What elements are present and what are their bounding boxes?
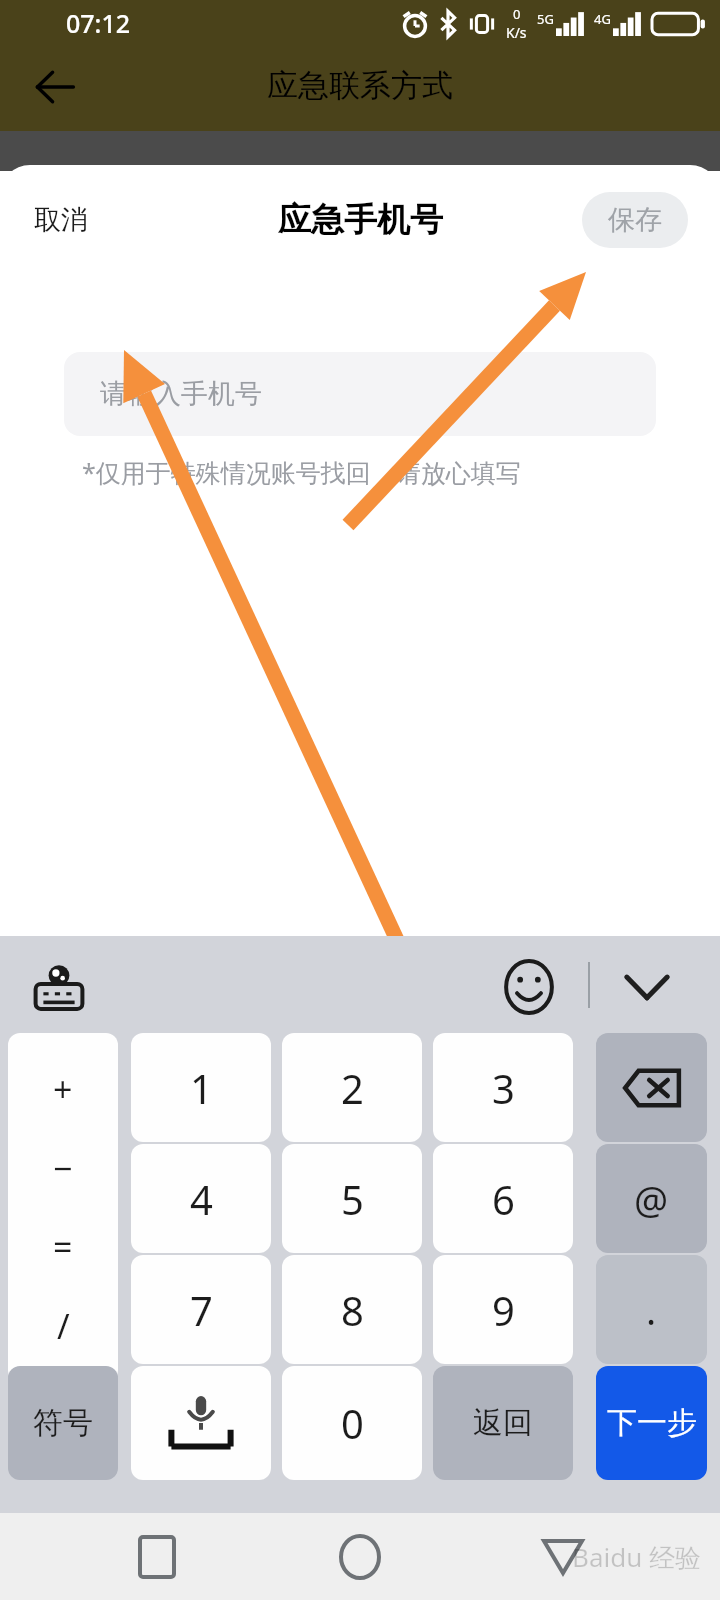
staticText: − — [53, 1145, 73, 1191]
button[interactable]: 6 — [433, 1144, 573, 1253]
button[interactable]: 保存 — [582, 192, 688, 248]
staticText: 返回 — [473, 1404, 533, 1442]
staticText: Baidu 经验 — [572, 1539, 702, 1575]
staticText: = — [53, 1224, 73, 1270]
staticText: 1 — [190, 1061, 213, 1115]
button[interactable]: 符号 — [8, 1366, 118, 1480]
staticText: 符号 — [33, 1404, 93, 1442]
staticText: 3 — [492, 1061, 515, 1115]
button[interactable]: . — [596, 1255, 707, 1364]
staticText: 8 — [341, 1283, 364, 1337]
staticText: 取消 — [34, 203, 88, 237]
button[interactable]: 下一步 — [596, 1366, 707, 1480]
button[interactable]: Voice input — [131, 1366, 271, 1480]
staticText: *仅用于特殊情况账号找回，请放心填写 — [82, 455, 521, 489]
button[interactable]: Backspace — [596, 1033, 707, 1142]
staticText: 4G — [594, 10, 611, 28]
button[interactable]: 请输入手机号 — [64, 352, 656, 436]
staticText: . — [646, 1284, 657, 1336]
staticText: 下一步 — [607, 1404, 697, 1442]
staticText: 2 — [341, 1061, 364, 1115]
staticText: 9 — [492, 1283, 515, 1337]
staticText: 5 — [341, 1172, 364, 1226]
button[interactable]: 0 — [282, 1366, 422, 1480]
button[interactable]: Back — [526, 1520, 600, 1594]
button[interactable]: Home — [323, 1520, 397, 1594]
other: Voice input — [164, 1395, 238, 1451]
button[interactable]: 取消 — [20, 193, 102, 247]
button[interactable]: 8 — [282, 1255, 422, 1364]
staticText: 0 — [513, 5, 521, 23]
button[interactable]: @ — [596, 1144, 707, 1253]
other: Backspace — [624, 1068, 680, 1108]
staticText: / — [57, 1303, 70, 1349]
staticText: 应急手机号 — [278, 199, 443, 241]
staticText: 7 — [190, 1283, 213, 1337]
button[interactable]: 9 — [433, 1255, 573, 1364]
button[interactable]: + — [8, 1033, 118, 1382]
staticText: 07:12 — [66, 6, 131, 40]
button[interactable]: Hide keyboard — [608, 954, 686, 1018]
staticText: 5G — [537, 10, 554, 28]
staticText: 4 — [190, 1172, 213, 1226]
button[interactable]: 5 — [282, 1144, 422, 1253]
button[interactable]: Switch input language — [22, 956, 96, 1016]
staticText: 应急联系方式 — [267, 66, 453, 105]
button[interactable]: Emoji — [494, 952, 564, 1022]
button[interactable]: 7 — [131, 1255, 271, 1364]
staticText: 保存 — [608, 203, 662, 237]
button[interactable]: 返回 — [433, 1366, 573, 1480]
staticText: 请输入手机号 — [100, 377, 262, 411]
staticText: @ — [634, 1173, 669, 1225]
staticText: 0 — [341, 1396, 364, 1450]
staticText: 6 — [492, 1172, 515, 1226]
button[interactable]: 3 — [433, 1033, 573, 1142]
button[interactable]: 4 — [131, 1144, 271, 1253]
button[interactable]: Recents — [120, 1520, 194, 1594]
button[interactable]: Back — [24, 56, 86, 118]
staticText: K/s — [506, 23, 527, 42]
button[interactable]: 2 — [282, 1033, 422, 1142]
button[interactable]: 1 — [131, 1033, 271, 1142]
staticText: + — [53, 1066, 73, 1112]
